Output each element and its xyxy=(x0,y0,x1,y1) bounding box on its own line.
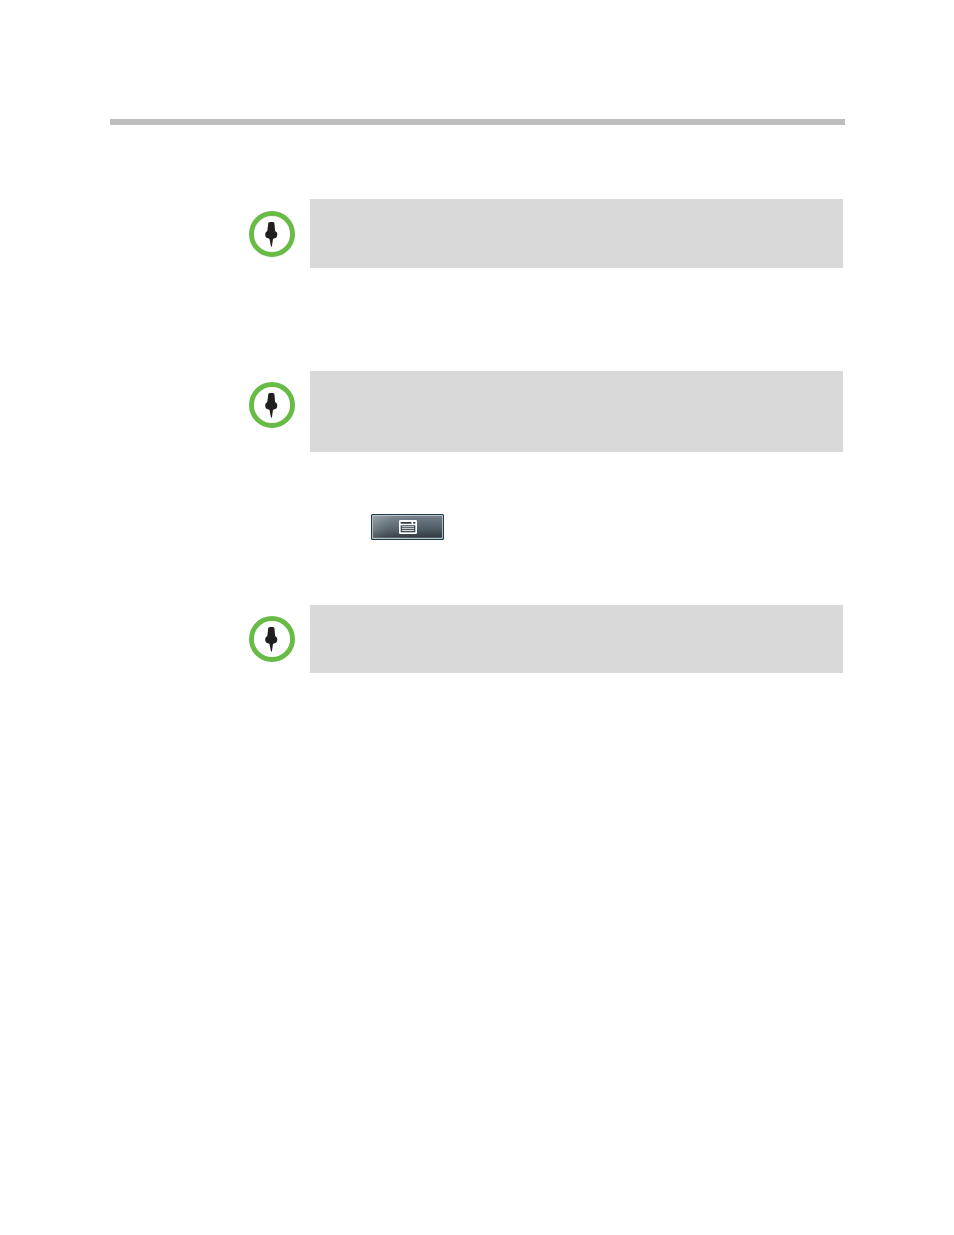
button[interactable]: Pin this step xyxy=(249,382,295,428)
button[interactable]: Pin this step xyxy=(249,211,295,257)
button[interactable]: Show window layout xyxy=(371,514,444,540)
button[interactable]: Pin this step xyxy=(249,616,295,662)
